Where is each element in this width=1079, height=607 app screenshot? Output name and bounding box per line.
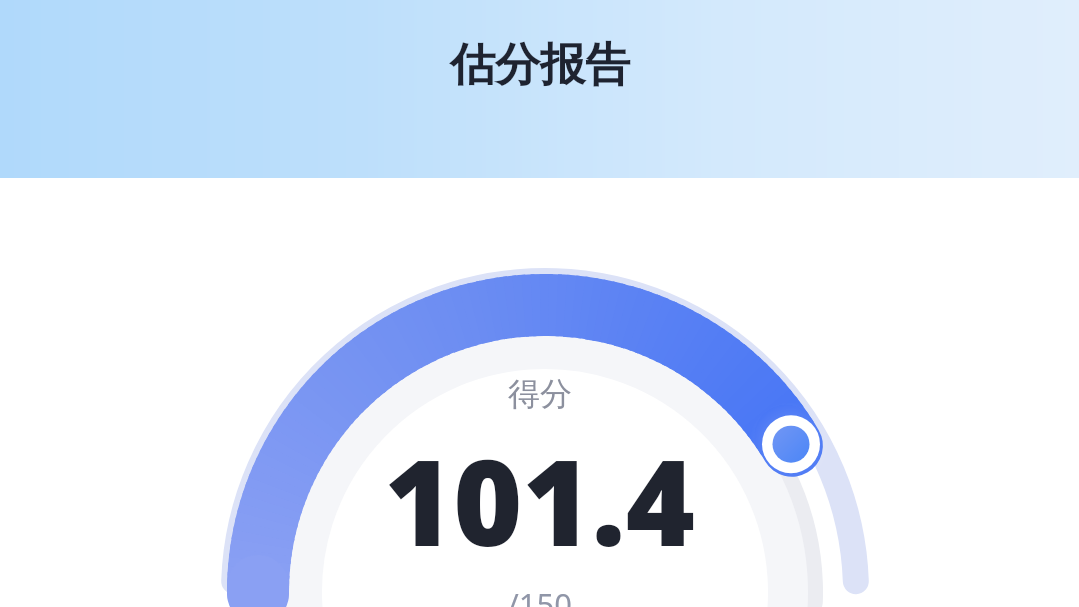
button[interactable]: 估分报告 xyxy=(450,37,630,94)
staticText: /150 xyxy=(507,583,572,607)
staticText: 得分 xyxy=(508,374,572,414)
staticText: 101.4 xyxy=(384,420,695,581)
